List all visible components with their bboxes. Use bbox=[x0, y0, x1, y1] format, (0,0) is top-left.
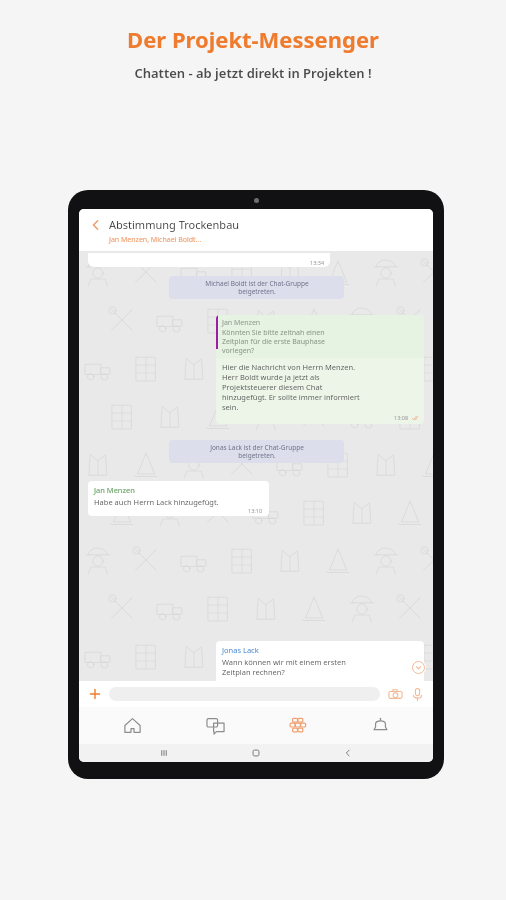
button[interactable]: Home bbox=[249, 746, 263, 760]
staticText: Habe auch Herrn Lack hinzugefügt. bbox=[94, 497, 219, 507]
button[interactable]: Jonas Lack ist der Chat-Gruppe beigetret… bbox=[169, 440, 344, 463]
button[interactable]: Jan Menzen bbox=[88, 481, 269, 516]
button[interactable]: Back bbox=[89, 218, 103, 232]
staticText: Abstimmung Trockenbau bbox=[109, 217, 240, 232]
button[interactable]: Notifications bbox=[350, 707, 410, 744]
button[interactable]: Back bbox=[89, 217, 433, 245]
staticText: Jan Menzen bbox=[222, 318, 261, 328]
staticText: Könnten Sie bitte zeitnah einen Zeitplan… bbox=[222, 328, 325, 355]
button[interactable]: Add attachment bbox=[87, 686, 103, 702]
button[interactable]: Back bbox=[341, 746, 355, 760]
staticText: Jonas Lack ist der Chat-Gruppe beigetret… bbox=[210, 443, 304, 460]
button[interactable]: Jan Menzen bbox=[216, 315, 424, 424]
staticText: Jan Menzen bbox=[94, 485, 135, 495]
staticText: Michael Boldt ist der Chat-Gruppe beiget… bbox=[205, 279, 309, 296]
button[interactable]: 13:34 bbox=[88, 253, 330, 267]
button[interactable]: Recents bbox=[157, 746, 171, 760]
button[interactable]: Michael Boldt ist der Chat-Gruppe beiget… bbox=[169, 276, 344, 299]
button[interactable]: Home bbox=[102, 707, 162, 744]
button[interactable]: Voice message bbox=[410, 687, 425, 702]
staticText: Jonas Lack bbox=[222, 645, 259, 655]
button[interactable]: Chats bbox=[185, 707, 245, 744]
staticText: 13:08 bbox=[394, 414, 409, 421]
button[interactable]: Projects bbox=[267, 707, 327, 744]
button[interactable]: Scroll to bottom bbox=[411, 660, 426, 675]
staticText: Jan Menzen, Michael Boldt... bbox=[109, 235, 202, 245]
button[interactable]: Camera bbox=[388, 687, 403, 702]
staticText: Wann können wir mit einem ersten Zeitpla… bbox=[222, 657, 346, 677]
staticText: Hier die Nachricht von Herrn Menzen. Her… bbox=[222, 362, 360, 412]
button[interactable]: Jonas Lack bbox=[216, 641, 424, 681]
staticText: 13:34 bbox=[310, 259, 325, 266]
staticText: Chatten - ab jetzt direkt in Projekten ! bbox=[134, 64, 372, 82]
staticText: Der Projekt-Messenger bbox=[127, 24, 379, 54]
staticText: 13:10 bbox=[248, 507, 263, 514]
